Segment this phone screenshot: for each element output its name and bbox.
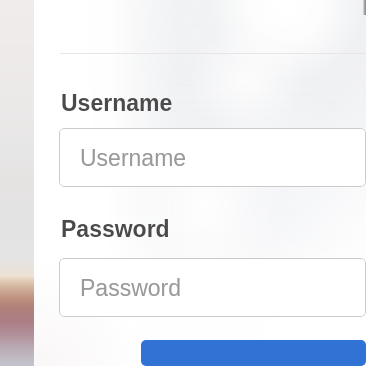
staticText: Username bbox=[80, 145, 187, 171]
staticText: Username bbox=[61, 90, 173, 116]
staticText: Password bbox=[80, 275, 181, 301]
button[interactable]: Password bbox=[59, 258, 366, 317]
button[interactable]: Username bbox=[59, 128, 366, 187]
staticText: Password bbox=[61, 216, 170, 242]
button[interactable] bbox=[141, 340, 366, 366]
